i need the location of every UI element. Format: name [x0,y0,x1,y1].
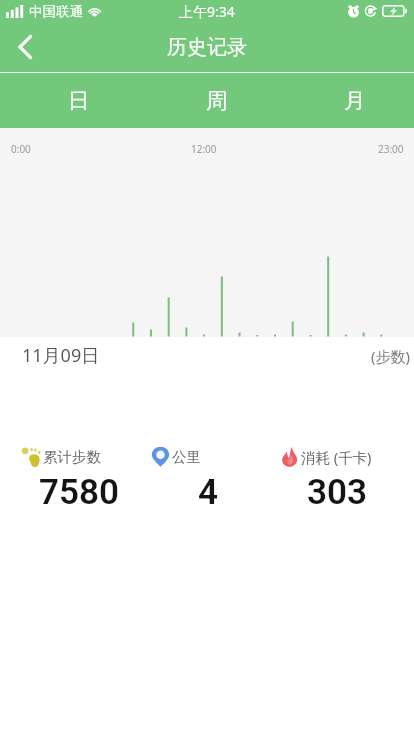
staticText: 0:00 [11,142,31,156]
staticText: 上午9:34 [179,2,235,21]
staticText: 11月09日 [22,343,100,368]
staticText: 303 [307,472,367,513]
button[interactable]: 月 [286,73,414,128]
staticText: (步数) [371,346,411,366]
staticText: 4 [198,472,218,513]
staticText: 公里 [172,448,201,466]
staticText: 历史记录 [167,35,247,60]
button[interactable]: 公里 [143,446,272,513]
button[interactable]: 日 [10,73,148,128]
staticText: 7580 [39,472,119,513]
button[interactable]: Back [6,28,44,66]
button[interactable]: 周 [148,73,286,128]
staticText: 月 [344,87,366,114]
staticText: 消耗 (千卡) [301,447,372,467]
staticText: 23:00 [378,142,404,156]
staticText: 累计步数 [43,448,101,466]
staticText: 中国联通 [29,3,83,20]
staticText: 周 [206,87,228,114]
button[interactable]: 累计步数 [14,446,143,513]
button[interactable]: 消耗 (千卡) [272,446,401,513]
staticText: 日 [68,87,90,114]
staticText: 12:00 [191,142,217,156]
